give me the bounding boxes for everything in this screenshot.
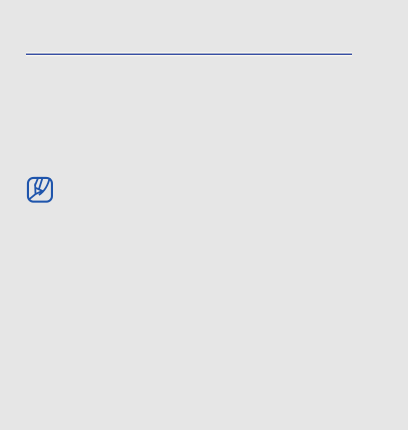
- button[interactable]: Note: [27, 177, 53, 203]
